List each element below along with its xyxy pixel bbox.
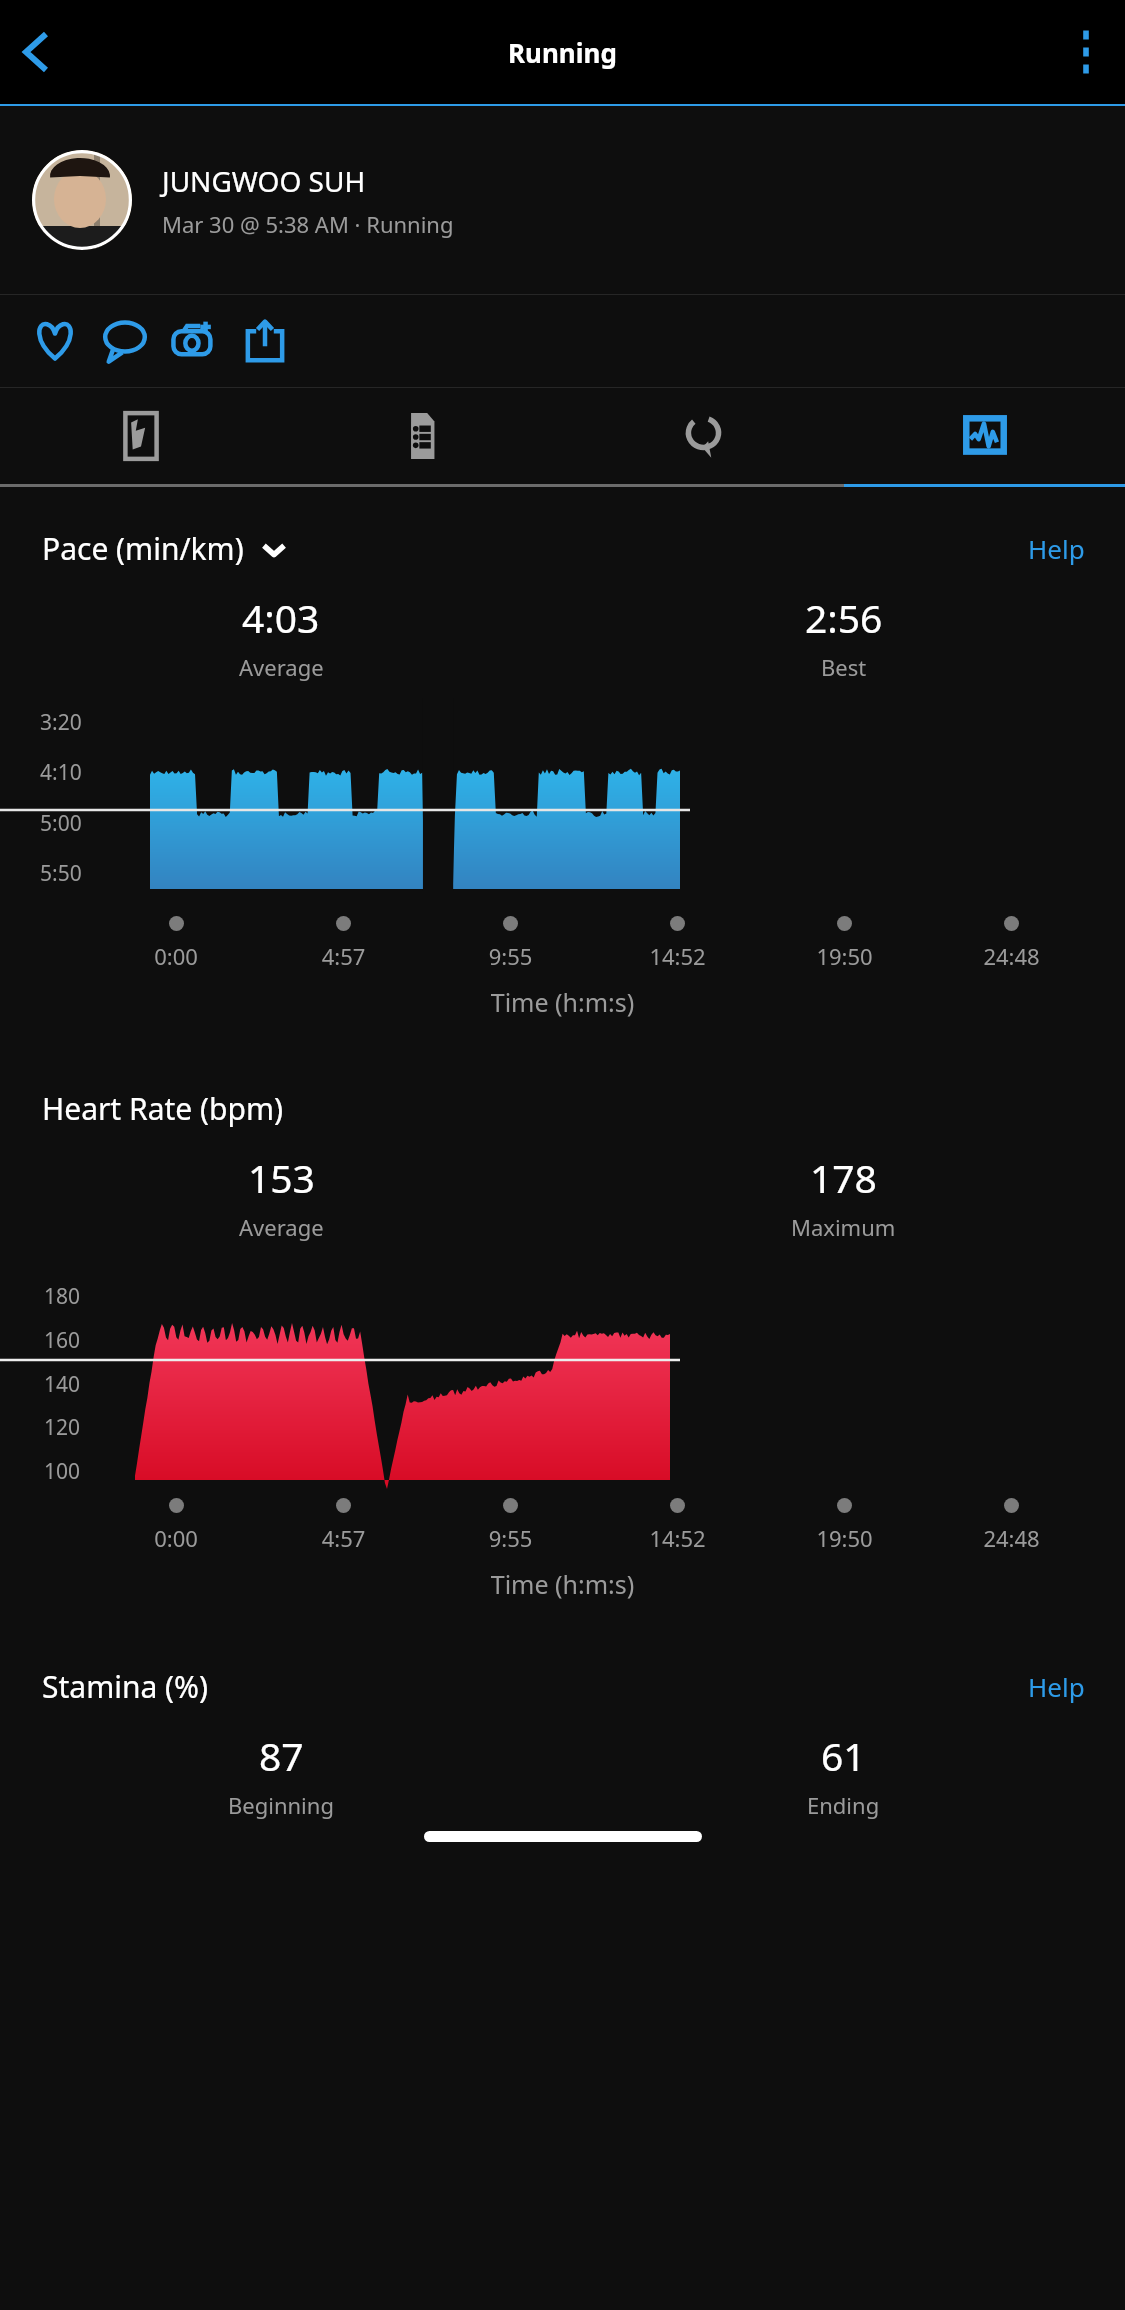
staticText: 0:00: [92, 1523, 260, 1553]
staticText: Average: [239, 1212, 324, 1242]
staticText: 180: [44, 1282, 81, 1311]
button[interactable]: Charts: [844, 388, 1125, 484]
button[interactable]: Map: [0, 388, 282, 484]
staticText: 4:10: [40, 758, 82, 787]
staticText: 14:52: [594, 941, 761, 971]
staticText: 9:55: [427, 941, 594, 971]
button[interactable]: JUNGWOO SUH: [0, 106, 1125, 294]
button[interactable]: Stamina (%): [42, 1666, 209, 1707]
staticText: 87: [259, 1729, 304, 1782]
staticText: Pace (min/km): [42, 528, 244, 569]
button[interactable]: Details: [282, 388, 563, 484]
staticText: 153: [248, 1151, 315, 1204]
staticText: Maximum: [791, 1212, 896, 1242]
button[interactable]: Add photo: [160, 306, 230, 376]
staticText: Time (h:m:s): [0, 985, 1125, 1019]
button[interactable]: Help: [1028, 1669, 1085, 1704]
staticText: Mar 30 @ 5:38 AM · Running: [162, 209, 454, 239]
staticText: 4:57: [260, 1523, 427, 1553]
staticText: Running: [508, 35, 617, 70]
staticText: 160: [44, 1326, 81, 1355]
button[interactable]: Laps: [563, 388, 844, 484]
button[interactable]: Pace (min/km): [42, 528, 288, 569]
staticText: 14:52: [594, 1523, 761, 1553]
button[interactable]: Help: [1028, 531, 1085, 566]
button[interactable]: More options: [1061, 27, 1111, 77]
button[interactable]: Like: [20, 306, 90, 376]
button[interactable]: Heart Rate (bpm): [42, 1088, 283, 1129]
staticText: Beginning: [228, 1790, 334, 1820]
staticText: Stamina (%): [42, 1666, 209, 1707]
staticText: 0:00: [92, 941, 260, 971]
staticText: 140: [44, 1370, 81, 1399]
button[interactable]: Share: [230, 306, 300, 376]
staticText: 4:03: [242, 591, 320, 644]
staticText: 5:50: [40, 859, 82, 888]
staticText: 19:50: [761, 1523, 928, 1553]
staticText: Heart Rate (bpm): [42, 1088, 283, 1129]
staticText: Ending: [807, 1790, 880, 1820]
staticText: 61: [821, 1729, 866, 1782]
staticText: 24:48: [928, 941, 1095, 971]
staticText: 19:50: [761, 941, 928, 971]
staticText: 120: [44, 1413, 81, 1442]
button[interactable]: Comment: [90, 306, 160, 376]
staticText: 3:20: [40, 708, 82, 737]
staticText: 2:56: [805, 591, 883, 644]
staticText: Best: [821, 652, 867, 682]
staticText: 24:48: [928, 1523, 1095, 1553]
staticText: 4:57: [260, 941, 427, 971]
staticText: 100: [44, 1457, 81, 1486]
button[interactable]: Back: [6, 22, 66, 82]
staticText: 5:00: [40, 809, 82, 838]
staticText: JUNGWOO SUH: [162, 162, 366, 200]
staticText: Time (h:m:s): [0, 1567, 1125, 1601]
staticText: 178: [810, 1151, 877, 1204]
staticText: 9:55: [427, 1523, 594, 1553]
staticText: Average: [239, 652, 324, 682]
